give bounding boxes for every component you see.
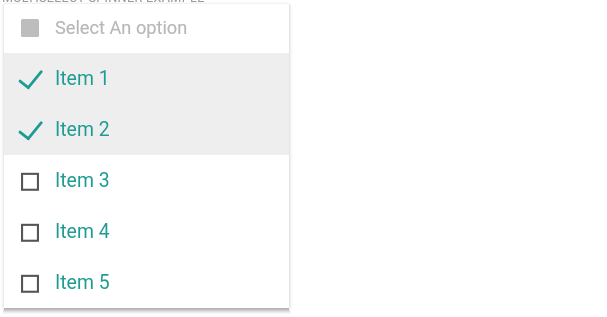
button[interactable]: Checked	[4, 53, 289, 104]
staticText: Item 4	[55, 220, 110, 243]
button[interactable]: Select An option	[4, 4, 289, 53]
other: Unchecked	[19, 220, 43, 244]
staticText: Select An option	[55, 17, 188, 38]
other: Unchecked	[19, 169, 43, 193]
staticText: MULTISELECT SPINNER EXAMPLE	[2, 0, 205, 5]
staticText: Item 2	[55, 118, 110, 141]
button[interactable]: Unchecked	[4, 155, 289, 206]
button[interactable]: Unchecked	[4, 257, 289, 308]
other: Checked	[19, 118, 43, 142]
staticText: Item 5	[55, 271, 110, 294]
other: Checked	[19, 67, 43, 91]
staticText: Item 3	[55, 169, 110, 192]
button[interactable]: Unchecked	[4, 206, 289, 257]
other: Unchecked	[19, 271, 43, 295]
button[interactable]: Checked	[4, 104, 289, 155]
staticText: Item 1	[55, 67, 110, 90]
